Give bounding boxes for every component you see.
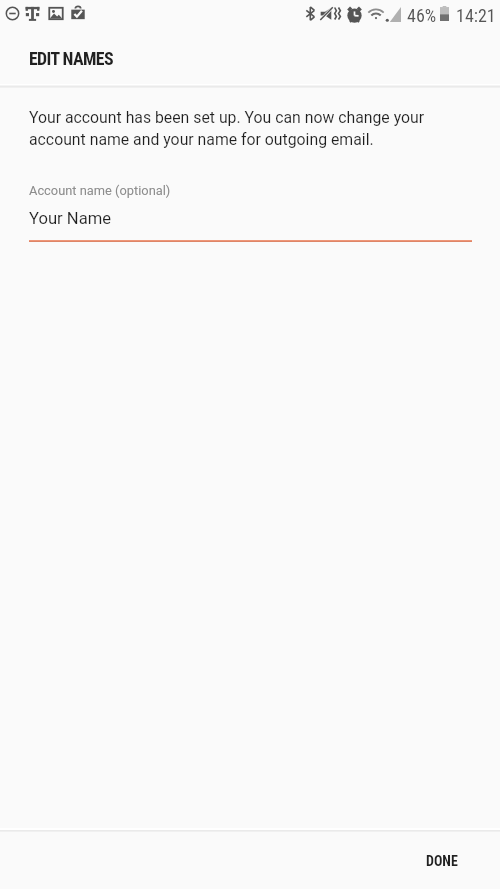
staticText: Your Name	[29, 209, 112, 228]
button[interactable]: Account name (optional)	[20, 175, 480, 247]
other: Do not disturb	[5, 6, 20, 21]
other: Battery 46 percent	[440, 6, 449, 21]
staticText: Account name (optional)	[29, 183, 171, 198]
other: Carrier	[25, 6, 40, 21]
other: Sound off, vibrate	[320, 6, 341, 21]
button[interactable]: DONE	[400, 831, 500, 889]
other: Screenshot captured	[49, 7, 63, 20]
other: Mobile signal	[387, 7, 401, 22]
button[interactable]: EDIT NAMES	[0, 28, 500, 84]
staticText: 14:21	[456, 5, 496, 26]
staticText: Your account has been set up. You can no…	[29, 108, 439, 149]
other: Wi-Fi	[368, 7, 384, 20]
staticText: EDIT NAMES	[29, 48, 113, 69]
staticText: DONE	[426, 853, 458, 869]
other: Alarm set	[346, 6, 363, 22]
staticText: 46%	[407, 5, 437, 26]
other: Bluetooth on	[305, 6, 316, 21]
other: Work profile	[71, 6, 85, 20]
